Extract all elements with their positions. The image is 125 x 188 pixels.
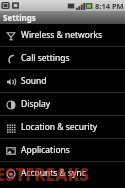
staticText: Applications [21,144,70,156]
staticText: Accounts & sync [21,167,86,179]
button[interactable]: Call settings [0,47,125,69]
staticText: Display [21,98,50,110]
staticText: 8:14 PM [95,1,124,11]
staticText: Sound [21,75,47,87]
staticText: Location & security [21,121,98,133]
button[interactable]: Applications [0,139,125,161]
staticText: Wireless & networks [21,29,103,41]
staticText: Call settings [21,52,70,64]
staticText: Settings [3,12,36,23]
button[interactable]: Location & security [0,116,125,138]
button[interactable]: Sound [0,70,125,92]
button[interactable]: Accounts & sync [0,162,125,184]
button[interactable]: Wireless & networks [0,24,125,46]
button[interactable]: Display [0,93,125,115]
staticText: ESTFREAKS [0,163,90,186]
